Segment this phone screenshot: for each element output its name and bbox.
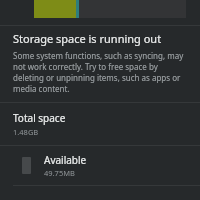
staticText: 1.48GB [13, 127, 39, 137]
staticText: Some system functions, such as syncing, … [13, 50, 187, 94]
button[interactable]: Available storage [0, 146, 200, 185]
staticText: 49.75MB [44, 168, 75, 178]
button[interactable]: Total space [0, 103, 200, 145]
staticText: Storage space is running out [13, 31, 162, 46]
staticText: Available [44, 153, 87, 167]
staticText: Total space [13, 111, 66, 125]
